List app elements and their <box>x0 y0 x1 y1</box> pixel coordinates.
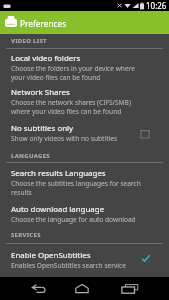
staticText: 10:26 <box>146 0 167 11</box>
staticText: No subtitles only <box>11 123 74 134</box>
staticText: Local video folders <box>11 53 81 64</box>
staticText: Choose the folders in your device where … <box>11 64 148 82</box>
staticText: Network Shares <box>11 87 70 98</box>
button[interactable]: Auto download language <box>0 203 169 235</box>
button[interactable]: Preferences <box>0 11 169 34</box>
button[interactable]: Network Shares <box>0 86 169 118</box>
staticText: VIDEO LIST <box>11 37 47 45</box>
button[interactable]: No subtitles only <box>0 122 169 154</box>
button[interactable]: Home <box>58 277 106 300</box>
staticText: Choose the network shares (CIFS/SMB) whe… <box>11 98 148 116</box>
staticText: LANGUAGES <box>11 152 50 160</box>
button[interactable]: Enable OpenSubtitles <box>0 249 169 281</box>
button[interactable]: Back <box>14 277 62 300</box>
staticText: Search results Languages <box>11 168 106 179</box>
button[interactable]: Recent apps <box>105 277 153 300</box>
staticText: Choose the language for auto download <box>11 215 136 224</box>
staticText: Enables OpenSubtitles search service <box>11 261 126 270</box>
staticText: Show only videos with no subtitles <box>11 134 118 143</box>
staticText: Choose the subtitles languages for searc… <box>11 179 148 197</box>
staticText: Preferences <box>20 18 67 29</box>
staticText: SERVICES <box>11 231 41 239</box>
staticText: Enable OpenSubtitles <box>11 250 91 261</box>
button[interactable]: Search results Languages <box>0 167 169 199</box>
button[interactable]: Local video folders <box>0 52 169 84</box>
staticText: Auto download language <box>11 204 105 215</box>
